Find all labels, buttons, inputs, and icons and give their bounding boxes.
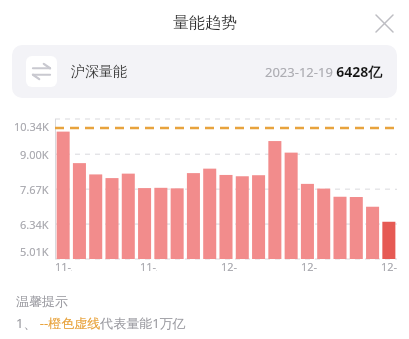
- staticText: 温馨提示: [16, 293, 68, 309]
- staticText: 5.01K: [20, 244, 49, 259]
- staticText: 11-28: [140, 259, 157, 274]
- button[interactable]: Close: [368, 7, 400, 39]
- staticText: 2023-12-19 6428亿: [265, 62, 383, 81]
- staticText: 12-12: [301, 259, 317, 274]
- staticText: 沪深量能: [71, 63, 127, 81]
- staticText: 12-19: [381, 259, 397, 274]
- staticText: 7.67K: [20, 182, 49, 197]
- staticText: 10.34K: [14, 119, 49, 134]
- staticText: 11-21: [55, 259, 72, 274]
- button[interactable]: 沪深量能: [12, 45, 397, 98]
- staticText: 12-05: [221, 259, 237, 274]
- staticText: 1、 --橙色虚线代表量能1万亿: [16, 314, 186, 332]
- staticText: 6.34K: [20, 217, 49, 232]
- staticText: 量能趋势: [173, 13, 237, 33]
- staticText: 9.00K: [20, 147, 49, 162]
